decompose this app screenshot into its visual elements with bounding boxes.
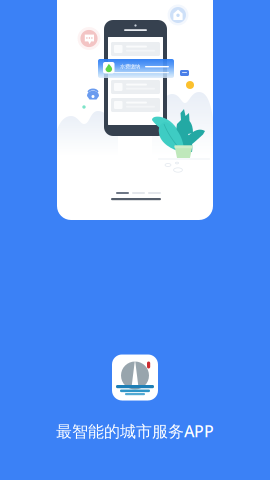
- staticText: 最智能的城市服务APP: [56, 420, 214, 442]
- staticText: 水费缴纳: [120, 63, 140, 70]
